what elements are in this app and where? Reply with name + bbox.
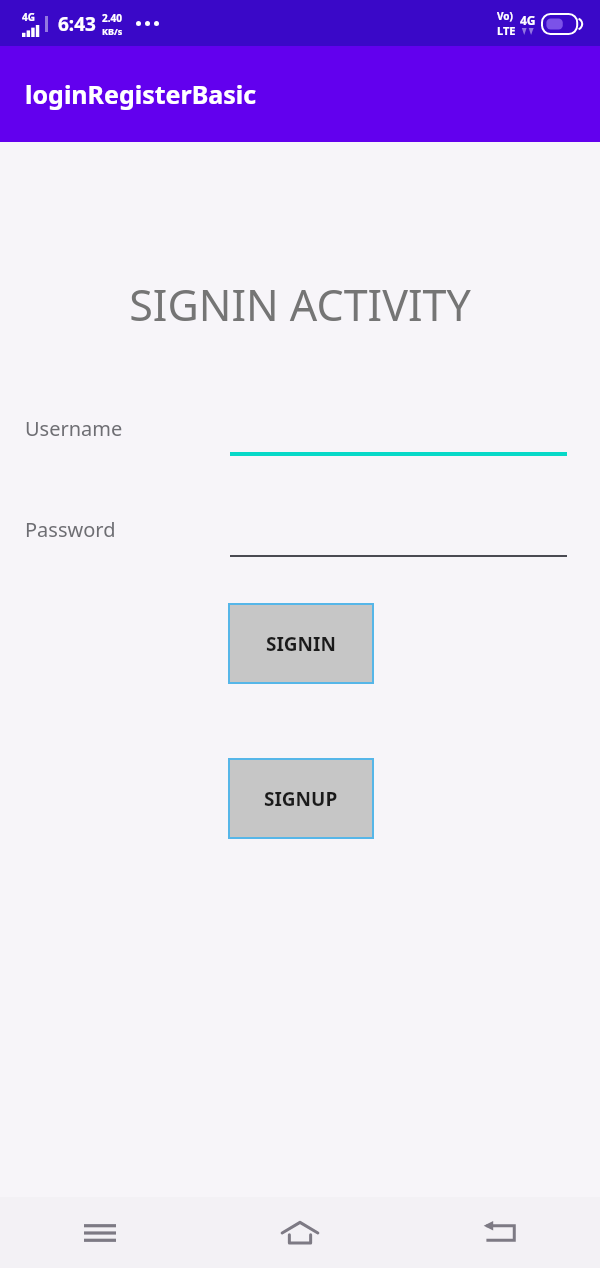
staticText: 4G [520, 12, 536, 28]
staticText: 4G [22, 10, 35, 24]
staticText: 2.40 [102, 11, 122, 25]
staticText: LTE [497, 23, 516, 38]
button[interactable]: SIGNIN [228, 603, 374, 684]
staticText: Vo) [497, 9, 513, 23]
staticText: SIGNIN [266, 631, 336, 657]
button[interactable]: Back [400, 1197, 600, 1268]
button[interactable]: SIGNUP [228, 758, 374, 839]
staticText: 6:43 [58, 11, 96, 37]
staticText: Username [25, 415, 123, 442]
staticText: loginRegisterBasic [25, 77, 257, 111]
button[interactable]: Home [200, 1197, 400, 1268]
staticText: SIGNUP [264, 786, 338, 812]
staticText: Password [25, 516, 116, 543]
staticText: SIGNIN ACTIVITY [0, 275, 600, 334]
staticText: KB/s [102, 25, 123, 37]
button[interactable]: Recent apps [0, 1197, 200, 1268]
